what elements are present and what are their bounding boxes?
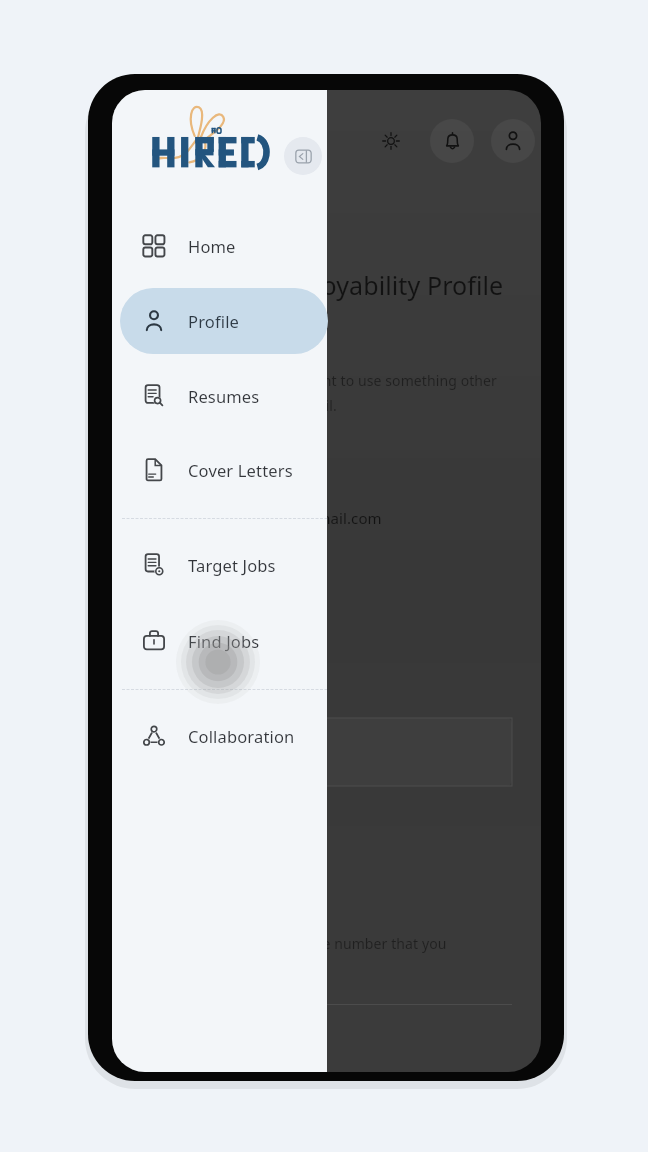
button[interactable]: Find Jobs (120, 608, 328, 674)
button[interactable]: Notifications (430, 119, 474, 163)
button[interactable]: Collaboration (120, 703, 328, 769)
staticText: the phone number that you (262, 934, 447, 953)
staticText: Target Jobs (188, 554, 276, 576)
staticText: Employability Profile (262, 268, 504, 302)
button[interactable]: Hired.ro (148, 102, 254, 178)
button[interactable]: Resumes (120, 363, 328, 429)
button[interactable]: Account (491, 119, 535, 163)
button[interactable]: Collapse sidebar (284, 137, 322, 175)
staticText: Profile (188, 310, 239, 332)
staticText: Resumes (188, 385, 260, 407)
staticText: Collaboration (188, 725, 295, 747)
button[interactable]: Home (120, 213, 328, 279)
staticText: Home (188, 235, 236, 257)
button[interactable]: Profile (120, 288, 328, 354)
button[interactable]: Target Jobs (120, 532, 328, 598)
staticText: Cover Letters (188, 459, 293, 481)
staticText: If you want to use something other (262, 371, 498, 390)
button[interactable] (262, 718, 512, 786)
staticText: than email. (262, 396, 337, 415)
button[interactable]: Toggle theme (375, 125, 407, 157)
button[interactable]: Cover Letters (120, 437, 328, 503)
staticText: user@gmail.com (262, 508, 382, 528)
staticText: Find Jobs (188, 630, 260, 652)
